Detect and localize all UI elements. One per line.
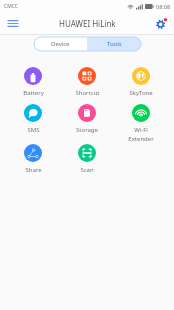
button[interactable]: Shortcut [60,62,114,99]
staticText: CMCC [4,3,18,10]
button[interactable]: Tools [87,37,141,51]
staticText: Wi-Fi Extender [128,126,154,142]
staticText: 08:08 [156,3,171,10]
staticText: Scan [80,166,94,174]
staticText: HUAWEI HiLink [59,18,116,29]
staticText: Tools [107,40,122,48]
staticText: SkyTone [129,89,153,97]
button[interactable]: Device [34,37,87,51]
staticText: Share [25,166,42,174]
button[interactable]: Settings [153,15,169,31]
button[interactable]: Menu [4,14,22,32]
button[interactable]: Storage [60,99,114,136]
button[interactable]: Share [6,139,60,176]
staticText: Device [51,40,70,48]
staticText: Storage [76,126,98,134]
button[interactable]: SMS [6,99,60,136]
button[interactable]: Scan [60,139,114,176]
button[interactable]: Wi-Fi Extender [114,99,168,144]
staticText: Shortcut [75,89,100,97]
staticText: SMS [27,126,40,134]
staticText: Battery [23,89,44,97]
button[interactable]: SkyTone [114,62,168,99]
button[interactable]: Battery [6,62,60,99]
